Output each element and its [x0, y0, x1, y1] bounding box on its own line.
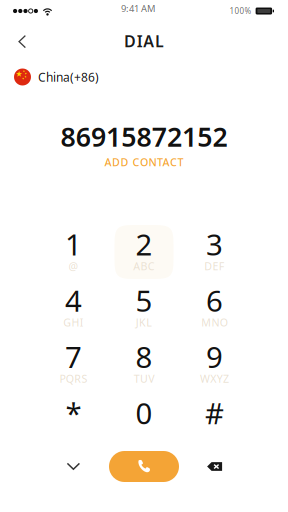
- staticText: @: [68, 259, 78, 273]
- staticText: 9: [206, 337, 223, 376]
- staticText: 2: [135, 224, 152, 263]
- button[interactable]: #: [185, 394, 244, 448]
- button[interactable]: 7: [44, 337, 103, 391]
- button[interactable]: China(+86): [15, 65, 105, 89]
- staticText: 4: [65, 281, 82, 320]
- staticText: 9:41 AM: [121, 2, 155, 15]
- button[interactable]: 4: [44, 281, 103, 335]
- staticText: 6: [206, 281, 223, 320]
- staticText: 3: [206, 224, 223, 263]
- staticText: *: [65, 393, 81, 432]
- staticText: 7: [65, 337, 82, 376]
- button[interactable]: 9: [185, 337, 244, 391]
- staticText: 100%: [230, 6, 252, 16]
- button[interactable]: *: [44, 394, 103, 448]
- staticText: 0: [135, 393, 152, 432]
- staticText: 86915872152: [60, 119, 227, 154]
- button[interactable]: Hide keypad: [44, 447, 103, 485]
- staticText: 5: [135, 281, 152, 320]
- button[interactable]: 3: [185, 225, 244, 279]
- staticText: WXYZ: [200, 371, 229, 386]
- staticText: ABC: [133, 259, 155, 273]
- button[interactable]: 0: [114, 394, 173, 448]
- staticText: MNO: [201, 315, 228, 329]
- button[interactable]: Call: [109, 447, 179, 485]
- button[interactable]: Back: [3, 26, 41, 58]
- button[interactable]: 5: [114, 281, 173, 335]
- button[interactable]: 1: [44, 225, 103, 279]
- staticText: 1: [65, 224, 82, 263]
- staticText: China(+86): [38, 69, 99, 85]
- button[interactable]: 2: [114, 225, 173, 279]
- button[interactable]: ADD CONTACT: [96, 153, 192, 171]
- staticText: TUV: [134, 371, 154, 386]
- button[interactable]: 8: [114, 337, 173, 391]
- staticText: DEF: [204, 259, 225, 273]
- staticText: DIAL: [124, 30, 164, 52]
- staticText: PQRS: [59, 371, 87, 386]
- staticText: #: [205, 393, 224, 432]
- staticText: JKL: [136, 315, 152, 329]
- staticText: ADD CONTACT: [104, 155, 183, 169]
- button[interactable]: 6: [185, 281, 244, 335]
- staticText: 8: [135, 337, 152, 376]
- button[interactable]: Delete: [185, 447, 244, 485]
- staticText: GHI: [63, 315, 84, 329]
